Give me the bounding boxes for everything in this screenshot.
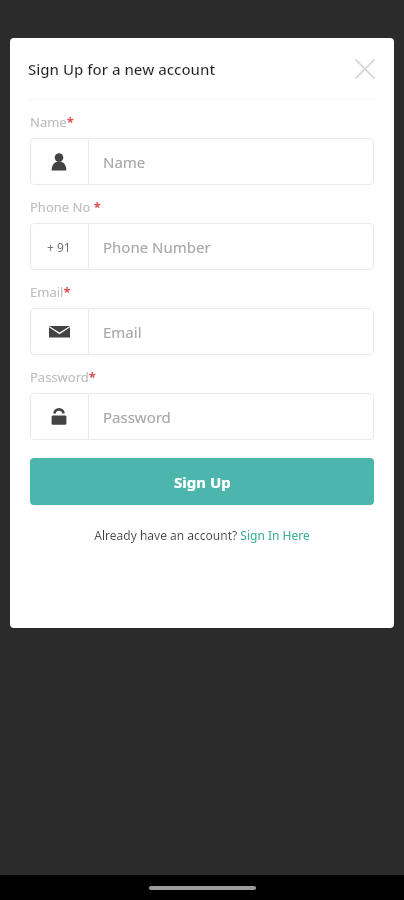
button[interactable]: + 91 (30, 223, 374, 270)
staticText: Name (103, 152, 146, 172)
staticText: Phone Number (103, 237, 211, 257)
button[interactable]: Password (30, 393, 374, 440)
staticText: Password (103, 407, 171, 427)
staticText: Email* (30, 283, 71, 301)
staticText: Sign Up for a new account (28, 59, 216, 79)
button[interactable]: Close (347, 51, 383, 87)
staticText: Email (103, 322, 142, 342)
staticText: Password* (30, 368, 96, 386)
button[interactable]: Name (30, 138, 374, 185)
staticText: Already have an account? Sign In Here (94, 527, 310, 543)
button[interactable]: Email (30, 308, 374, 355)
staticText: Sign Up (174, 472, 231, 492)
staticText: Phone No * (30, 198, 101, 216)
staticText: + 91 (47, 239, 71, 255)
staticText: Name* (30, 113, 74, 131)
button[interactable]: Already have an account? Sign In Here (10, 522, 394, 548)
button[interactable]: Sign Up (30, 458, 374, 505)
